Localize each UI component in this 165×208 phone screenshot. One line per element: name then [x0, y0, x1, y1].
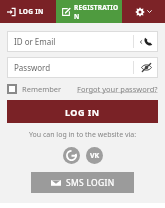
- button[interactable]: SMS LOGIN: [31, 172, 134, 193]
- staticText: ID or Email: [14, 36, 133, 47]
- button[interactable]: Password: [7, 57, 158, 78]
- button[interactable]: LOG IN: [0, 0, 56, 23]
- button[interactable]: Show password: [134, 57, 158, 78]
- staticText: Password: [14, 62, 133, 73]
- button[interactable]: Log in with VK: [86, 147, 103, 164]
- staticText: VK: [90, 151, 100, 161]
- staticText: LOG IN: [19, 7, 44, 16]
- staticText: LOG IN: [65, 106, 100, 118]
- button[interactable]: LOG IN: [7, 100, 158, 123]
- button[interactable]: ID or Email: [7, 31, 158, 52]
- button[interactable]: Settings: [122, 0, 165, 23]
- staticText: SMS LOGIN: [66, 177, 115, 189]
- button[interactable]: Log in with Google: [63, 147, 80, 164]
- staticText: Remember: [22, 84, 62, 94]
- button[interactable]: Remember: [7, 84, 62, 94]
- button[interactable]: Select country code: [134, 31, 158, 52]
- staticText: REGISTRATION: [74, 3, 122, 21]
- button[interactable]: REGISTRATION: [56, 0, 122, 23]
- button[interactable]: Forgot your password?: [77, 84, 158, 94]
- staticText: You can log in to the website via:: [7, 130, 158, 140]
